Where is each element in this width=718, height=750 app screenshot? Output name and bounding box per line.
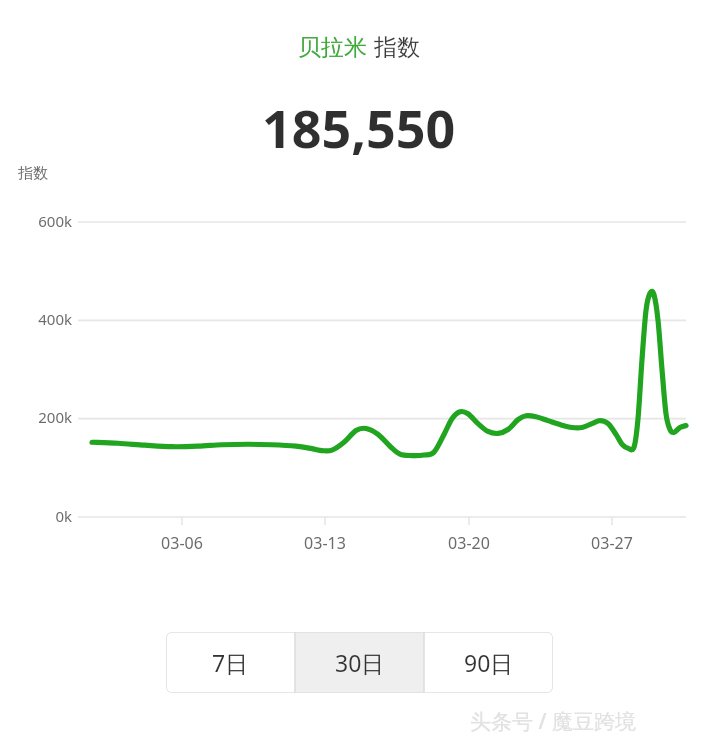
staticText: 600k: [14, 211, 72, 231]
button[interactable]: 30日: [295, 632, 424, 693]
staticText: 400k: [14, 309, 72, 329]
button[interactable]: 90日: [424, 632, 553, 693]
staticText: 头条号 / 魔豆跨境: [470, 707, 637, 736]
staticText: 7日: [212, 647, 249, 678]
staticText: 03-20: [429, 532, 509, 554]
staticText: 0k: [14, 506, 72, 526]
staticText: 03-13: [285, 532, 365, 554]
button[interactable]: 7日: [166, 632, 295, 693]
staticText: 200k: [14, 407, 72, 427]
staticText: 185,550: [262, 92, 456, 163]
staticText: 贝拉米: [298, 33, 367, 62]
staticText: 03-06: [142, 532, 222, 554]
staticText: 30日: [335, 647, 385, 678]
staticText: 90日: [464, 647, 514, 678]
staticText: 指数: [18, 164, 48, 183]
staticText: 指数: [374, 33, 420, 62]
staticText: 03-27: [572, 532, 652, 554]
